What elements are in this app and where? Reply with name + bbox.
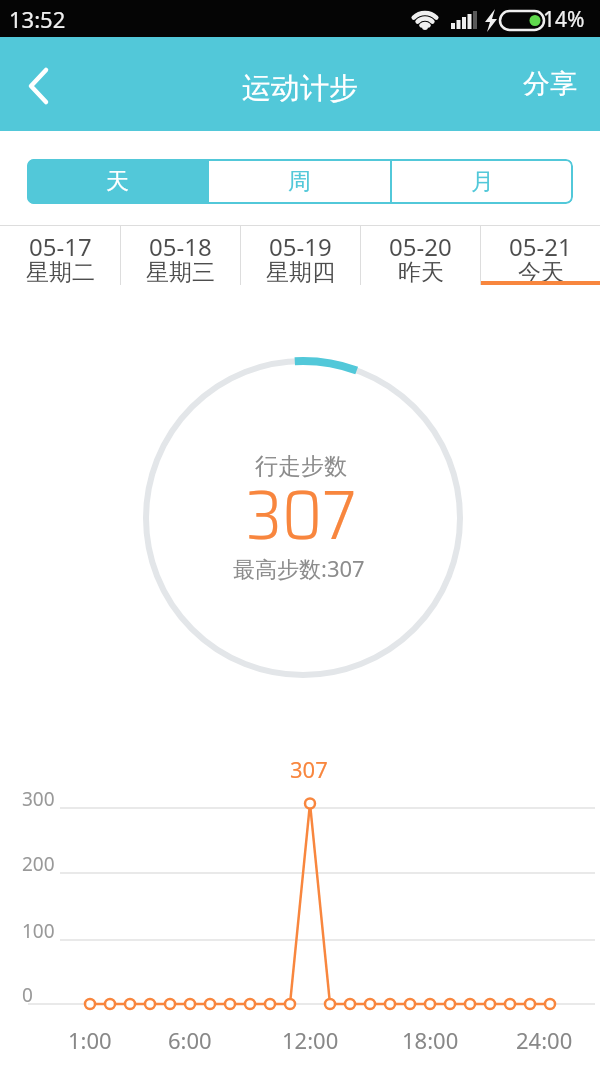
staticText: 昨天 bbox=[398, 258, 444, 287]
button[interactable]: 月 bbox=[392, 159, 573, 204]
staticText: 分享 bbox=[523, 67, 577, 101]
staticText: 最高步数:307 bbox=[233, 553, 365, 583]
staticText: 307 bbox=[290, 754, 328, 784]
staticText: 星期四 bbox=[266, 258, 335, 287]
staticText: 05-17 bbox=[29, 230, 92, 260]
staticText: 14% bbox=[543, 5, 585, 34]
staticText: 100 bbox=[22, 918, 55, 944]
button[interactable]: 05-20 bbox=[361, 226, 480, 285]
staticText: 星期二 bbox=[26, 258, 95, 287]
button[interactable]: 分享 bbox=[523, 37, 600, 131]
button[interactable]: 05-19 bbox=[241, 226, 360, 285]
button[interactable]: 05-21 bbox=[481, 226, 600, 285]
button[interactable]: 05-17 bbox=[0, 226, 120, 285]
staticText: 05-21 bbox=[509, 230, 572, 260]
staticText: 今天 bbox=[518, 258, 564, 287]
staticText: 300 bbox=[22, 786, 55, 812]
staticText: 12:00 bbox=[282, 1025, 339, 1055]
staticText: 星期三 bbox=[146, 258, 215, 287]
staticText: 24:00 bbox=[516, 1025, 573, 1055]
staticText: 天 bbox=[106, 167, 129, 196]
button[interactable]: 天 bbox=[27, 159, 207, 204]
staticText: 0 bbox=[22, 982, 33, 1008]
staticText: 运动计步 bbox=[242, 70, 358, 107]
button[interactable]: 周 bbox=[209, 159, 390, 204]
staticText: 行走步数 bbox=[255, 452, 347, 481]
button[interactable] bbox=[0, 37, 70, 131]
staticText: 月 bbox=[471, 167, 494, 196]
staticText: 6:00 bbox=[168, 1025, 212, 1055]
staticText: 13:52 bbox=[9, 4, 66, 34]
staticText: 18:00 bbox=[402, 1025, 459, 1055]
staticText: 307 bbox=[246, 460, 357, 520]
staticText: 05-18 bbox=[149, 230, 212, 260]
staticText: 05-19 bbox=[269, 230, 332, 260]
button[interactable]: 05-18 bbox=[121, 226, 240, 285]
staticText: 周 bbox=[288, 167, 311, 196]
staticText: 05-20 bbox=[389, 230, 452, 260]
staticText: 1:00 bbox=[68, 1025, 112, 1055]
staticText: 200 bbox=[22, 851, 55, 877]
